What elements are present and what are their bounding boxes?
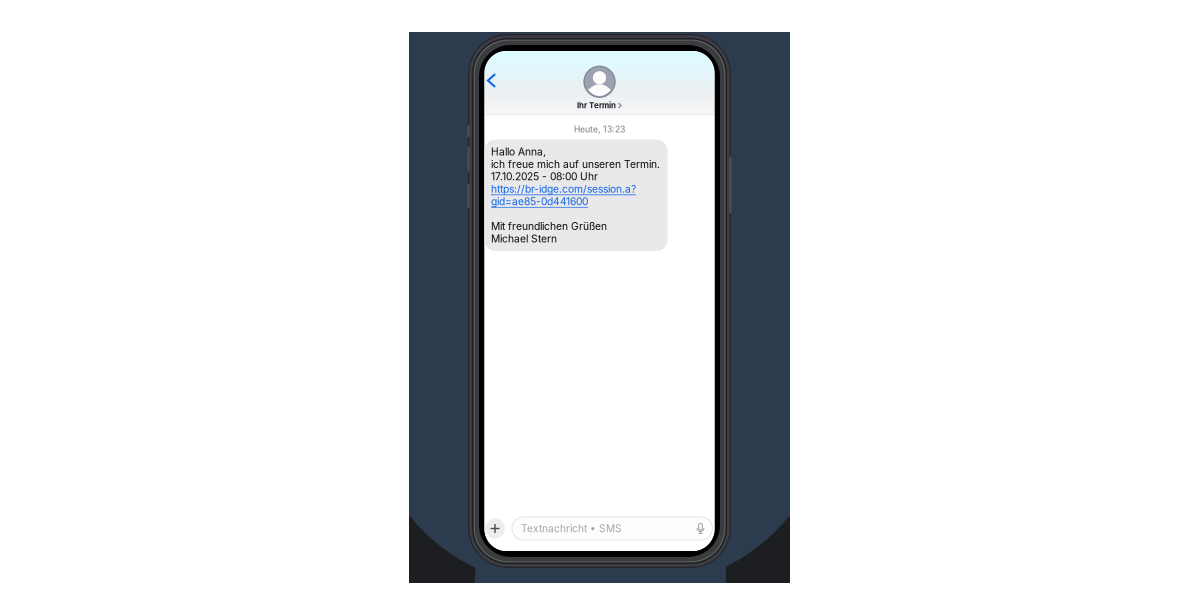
staticText: 17.10.2025 - 08:00 Uhr [491, 170, 598, 183]
button[interactable]: More options [485, 518, 505, 538]
staticText: Textnachricht • SMS [521, 522, 622, 535]
staticText: gid=ae85-0d441600 [491, 195, 588, 208]
button[interactable]: Back [480, 64, 502, 96]
staticText: Michael Stern [491, 232, 557, 245]
button[interactable]: Ihr Termin, conversation details [567, 63, 632, 113]
staticText: Heute, 13:23 [574, 124, 625, 134]
staticText: Ihr Termin [577, 101, 616, 110]
staticText: ich freue mich auf unseren Termin. [491, 158, 660, 170]
button[interactable]: Textnachricht, SMS [512, 517, 712, 540]
staticText: Hallo Anna, [491, 145, 546, 158]
staticText: https://br-idge.com/session.a? [491, 183, 636, 195]
staticText: Mit freundlichen Grüßen [491, 220, 607, 232]
